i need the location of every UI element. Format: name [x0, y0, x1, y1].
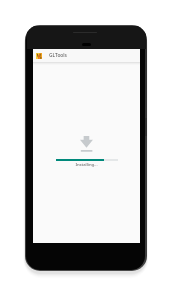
other: GLTools app icon [36, 53, 42, 59]
staticText: GLTools [49, 52, 67, 59]
other: Downloading [80, 136, 93, 151]
staticText: Installing... [75, 162, 98, 168]
button[interactable]: GLTools app icon [33, 49, 140, 62]
